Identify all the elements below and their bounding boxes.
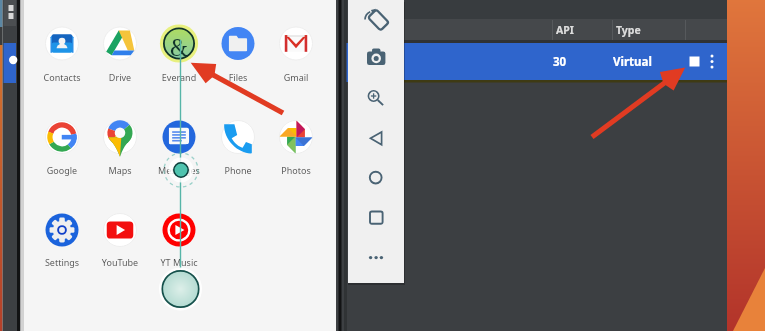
staticText: Messages	[144, 164, 214, 176]
button[interactable]: Messages	[144, 164, 214, 176]
staticText: API	[556, 23, 574, 37]
staticText: Photos	[261, 164, 331, 176]
button[interactable]: Home	[350, 160, 404, 198]
button[interactable]: Gmail	[261, 71, 331, 83]
button[interactable]: Overview	[350, 199, 404, 237]
staticText: Phone	[203, 164, 273, 176]
staticText: Maps	[85, 164, 155, 176]
button[interactable]: YouTube	[85, 256, 155, 268]
staticText: Drive	[85, 71, 155, 83]
button[interactable]: Rotate	[350, 0, 404, 38]
staticText: YouTube	[85, 256, 155, 268]
button[interactable]: Google	[27, 164, 97, 176]
button[interactable]: Settings	[27, 256, 97, 268]
staticText: Type	[616, 23, 641, 37]
button[interactable]: More actions	[704, 52, 720, 72]
button[interactable]: Files	[203, 71, 273, 83]
staticText: Virtual	[613, 54, 652, 70]
staticText: YT Music	[144, 256, 214, 268]
button[interactable]: Contacts	[27, 71, 97, 83]
staticText: Gmail	[261, 71, 331, 83]
staticText: Google	[27, 164, 97, 176]
staticText: Contacts	[27, 71, 97, 83]
button[interactable]: Stop emulator	[688, 55, 702, 69]
button[interactable]: More	[350, 240, 404, 278]
staticText: 30	[553, 54, 567, 70]
button[interactable]: Drive	[85, 71, 155, 83]
staticText: Settings	[27, 256, 97, 268]
button[interactable]: Phone	[203, 164, 273, 176]
button[interactable]: Zoom	[350, 78, 404, 116]
staticText: Files	[203, 71, 273, 83]
button[interactable]: Take screenshot	[350, 40, 404, 78]
staticText: &	[159, 30, 199, 63]
button[interactable]: YT Music	[144, 256, 214, 268]
button[interactable]: Photos	[261, 164, 331, 176]
staticText: Everand	[144, 71, 214, 83]
button[interactable]: Back	[350, 120, 404, 158]
button[interactable]: Maps	[85, 164, 155, 176]
button[interactable]: Everand	[144, 71, 214, 83]
